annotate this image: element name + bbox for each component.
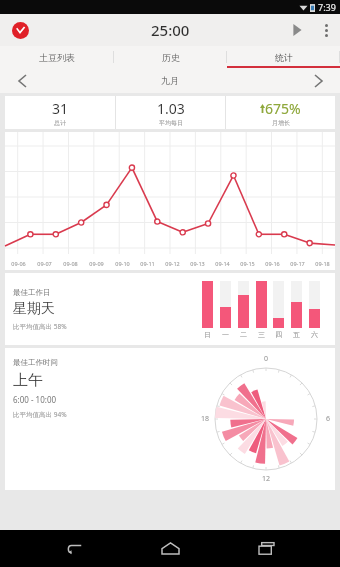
staticText: 09-12 <box>165 260 180 267</box>
button[interactable]: 1.03 <box>116 96 225 129</box>
button[interactable]: Recents <box>244 530 288 567</box>
staticText: 09-14 <box>215 260 230 267</box>
button[interactable]: Play <box>282 15 312 45</box>
button[interactable]: 最佳工作时间 <box>5 348 335 490</box>
staticText: 五 <box>293 330 300 339</box>
staticText: 09-08 <box>63 260 78 267</box>
button[interactable]: 31 <box>5 96 115 129</box>
button[interactable]: 最佳工作日 <box>5 273 335 345</box>
staticText: 09-11 <box>140 260 155 267</box>
staticText: 最佳工作日 <box>13 288 51 297</box>
button[interactable]: 09-06 <box>5 132 335 270</box>
staticText: 09-07 <box>37 260 52 267</box>
staticText: 675% <box>265 99 301 118</box>
staticText: 比平均值高出 58% <box>13 322 67 331</box>
staticText: 四 <box>275 330 282 339</box>
staticText: 25:00 <box>151 20 190 40</box>
staticText: 九月 <box>161 75 179 86</box>
staticText: 最佳工作时间 <box>13 358 58 367</box>
staticText: 三 <box>258 330 265 339</box>
staticText: 6:00 - 10:00 <box>13 394 57 405</box>
staticText: 09-18 <box>315 260 330 267</box>
staticText: 二 <box>240 330 247 339</box>
staticText: 7:39 <box>318 1 336 13</box>
button[interactable]: 统计 <box>227 46 340 68</box>
staticText: 日 <box>204 330 211 339</box>
staticText: 09-10 <box>115 260 130 267</box>
staticText: 比平均值高出 94% <box>13 410 67 419</box>
staticText: 31 <box>52 99 69 118</box>
staticText: 09-13 <box>190 260 205 267</box>
staticText: 星期天 <box>13 300 55 318</box>
staticText: 6 <box>326 414 331 424</box>
staticText: 一 <box>222 330 229 339</box>
staticText: 月增长 <box>272 119 290 127</box>
staticText: 09-16 <box>265 260 280 267</box>
staticText: 12 <box>262 474 271 484</box>
button[interactable]: Home <box>148 530 192 567</box>
button[interactable]: 土豆列表 <box>0 46 114 68</box>
staticText: 土豆列表 <box>39 52 75 63</box>
staticText: 历史 <box>162 52 180 63</box>
staticText: 上午 <box>13 371 43 390</box>
staticText: 0 <box>264 354 269 364</box>
staticText: 1.03 <box>157 99 185 118</box>
staticText: 统计 <box>275 52 293 63</box>
staticText: 09-17 <box>290 260 305 267</box>
staticText: 09-09 <box>89 260 104 267</box>
staticText: 平均每日 <box>159 119 183 127</box>
staticText: 09-15 <box>240 260 255 267</box>
staticText: 总计 <box>54 119 66 127</box>
button[interactable]: App logo <box>8 18 32 42</box>
button[interactable]: 675% <box>226 96 335 129</box>
button[interactable]: More options <box>312 16 340 44</box>
staticText: 18 <box>201 414 210 424</box>
button[interactable]: Previous month <box>0 68 44 93</box>
staticText: 09-06 <box>11 260 26 267</box>
button[interactable]: 历史 <box>114 46 227 68</box>
staticText: 六 <box>311 330 318 339</box>
button[interactable]: Back <box>52 530 96 567</box>
button[interactable]: Next month <box>296 68 340 93</box>
